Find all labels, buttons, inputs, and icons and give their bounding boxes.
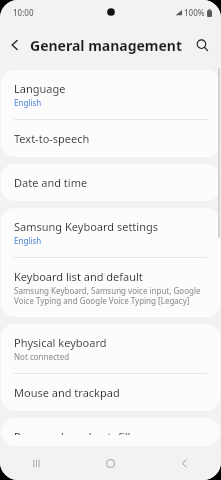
staticText: English [14, 235, 42, 246]
staticText: Samsung Keyboard settings [14, 219, 159, 234]
staticText: Text-to-speech [14, 131, 90, 146]
staticText: English [14, 97, 42, 108]
button[interactable]: Mouse and trackpad [1, 374, 220, 411]
staticText: General management [30, 36, 183, 55]
button[interactable]: Samsung Keyboard settings [1, 208, 220, 257]
button[interactable]: Back [0, 30, 30, 60]
button[interactable]: Physical keyboard [1, 324, 220, 373]
staticText: 100% [184, 7, 205, 18]
staticText: Date and time [14, 175, 88, 190]
button[interactable]: Language [1, 70, 220, 119]
button[interactable]: Back [147, 446, 221, 480]
button[interactable]: Date and time [1, 164, 220, 201]
staticText: 10:00 [13, 7, 34, 18]
button[interactable]: Home [73, 446, 147, 480]
button[interactable]: Passwords and autofill [1, 418, 220, 446]
staticText: Passwords and autofill [14, 429, 131, 435]
button[interactable]: Text-to-speech [1, 120, 220, 157]
button[interactable]: Keyboard list and default [1, 258, 220, 317]
staticText: Not connected [14, 351, 70, 362]
button[interactable]: Search [187, 30, 217, 60]
button[interactable]: Recents [0, 446, 73, 480]
staticText: Language [14, 81, 66, 96]
staticText: Keyboard list and default [14, 269, 143, 284]
staticText: Samsung Keyboard, Samsung voice input, G… [14, 285, 207, 306]
staticText: Physical keyboard [14, 335, 107, 350]
staticText: Mouse and trackpad [14, 385, 120, 400]
